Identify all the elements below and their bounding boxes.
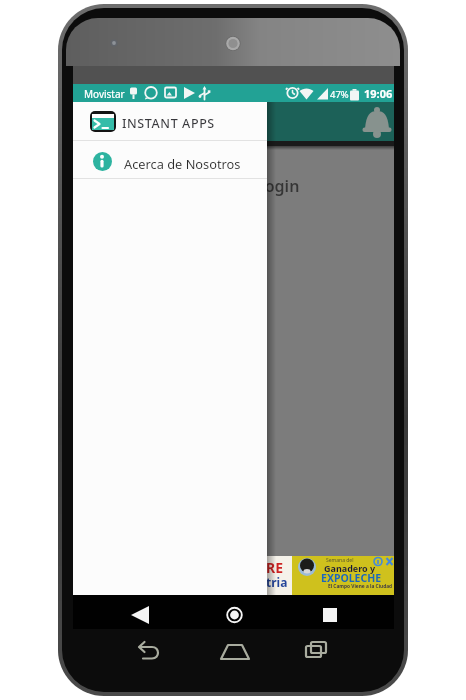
button[interactable]: INSTANT APPS [73, 102, 267, 140]
button[interactable]: Login [256, 174, 306, 200]
button[interactable] [125, 597, 157, 627]
staticText: Login [256, 175, 300, 197]
staticText: Semana del [326, 557, 354, 564]
button[interactable] [73, 556, 394, 595]
staticText: tria [266, 574, 288, 590]
staticText: Acerca de Nosotros [124, 155, 241, 172]
staticText: INSTANT APPS [122, 115, 215, 132]
staticText: El Campo Viene a la Ciudad [328, 583, 393, 590]
button[interactable] [363, 104, 393, 139]
button[interactable] [221, 597, 253, 627]
staticText: Ganadero y [324, 562, 376, 574]
staticText: 47% [330, 88, 349, 101]
staticText: Movistar [84, 87, 125, 101]
staticText: RE [266, 558, 284, 577]
staticText: 19:06 [364, 86, 393, 101]
staticText: EXPOLECHE [321, 571, 382, 585]
button[interactable]: Acerca de Nosotros [73, 141, 267, 178]
button[interactable] [309, 597, 341, 627]
